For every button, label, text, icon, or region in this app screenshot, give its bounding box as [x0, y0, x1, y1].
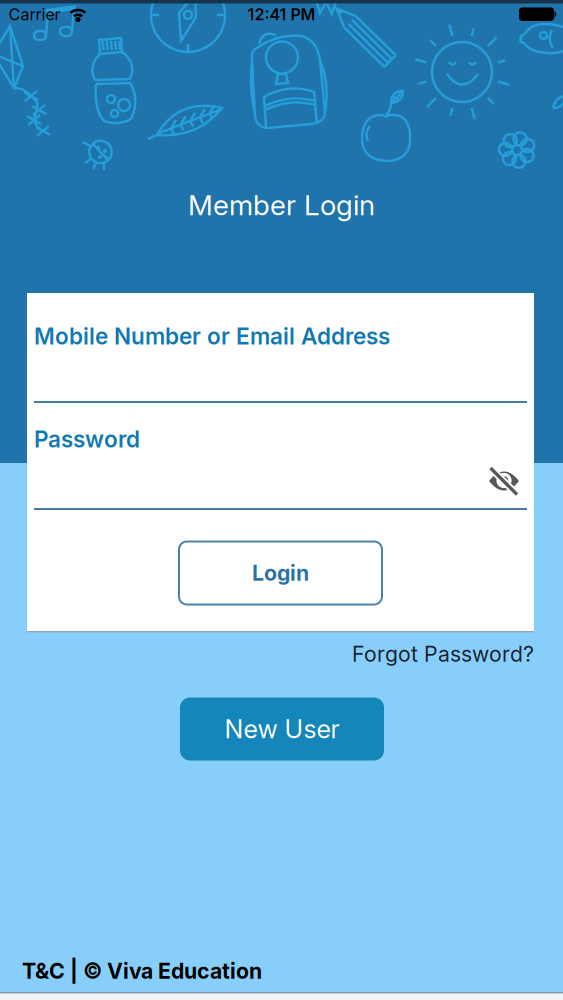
- staticText: Password: [34, 426, 140, 453]
- button[interactable]: Show password: [482, 458, 526, 502]
- staticText: T&C | © Viva Education: [22, 958, 262, 984]
- staticText: 12:41 PM: [247, 5, 315, 24]
- staticText: Carrier: [8, 5, 60, 24]
- staticText: New User: [224, 714, 339, 744]
- button[interactable]: Password: [34, 426, 527, 510]
- button[interactable]: Forgot Password?: [352, 641, 534, 667]
- staticText: Member Login: [188, 188, 375, 221]
- button[interactable]: Mobile Number or Email Address: [34, 323, 527, 403]
- button[interactable]: New User: [180, 697, 384, 760]
- button[interactable]: Login: [179, 541, 382, 604]
- staticText: Mobile Number or Email Address: [34, 323, 390, 350]
- staticText: Login: [252, 560, 309, 586]
- staticText: Forgot Password?: [352, 641, 534, 667]
